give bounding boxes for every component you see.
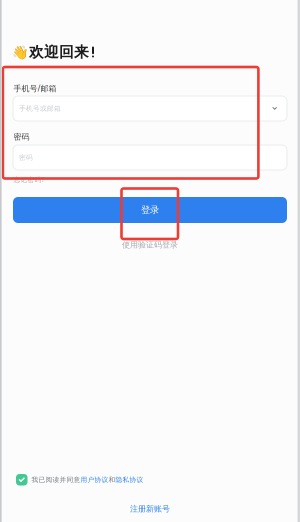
button[interactable]: 登录 (13, 197, 287, 223)
staticText: 和 (108, 476, 115, 484)
staticText: 密码 (19, 153, 33, 162)
button[interactable]: 同意用户协议和隐私协议 (16, 474, 27, 485)
staticText: 👋 (12, 44, 29, 60)
button[interactable]: 忘记密码? (13, 175, 44, 184)
button[interactable]: 用户协议 (80, 476, 108, 484)
button[interactable]: 注册新账号 (13, 504, 287, 514)
staticText: 我已阅读并同意 (31, 476, 80, 484)
staticText: 隐私协议 (115, 476, 143, 484)
staticText: 注册新账号 (130, 504, 170, 514)
staticText: 手机号/邮箱 (13, 83, 56, 94)
staticText: 密码 (13, 132, 29, 142)
button[interactable]: 使用验证码登录 (13, 240, 287, 250)
button[interactable]: 隐私协议 (115, 476, 143, 484)
staticText: 忘记密码? (13, 175, 44, 184)
staticText: 用户协议 (80, 476, 108, 484)
staticText: 手机号或邮箱 (19, 104, 61, 113)
staticText: 使用验证码登录 (122, 240, 178, 250)
staticText: 欢迎回来 (29, 43, 89, 61)
staticText: 登录 (141, 204, 159, 216)
